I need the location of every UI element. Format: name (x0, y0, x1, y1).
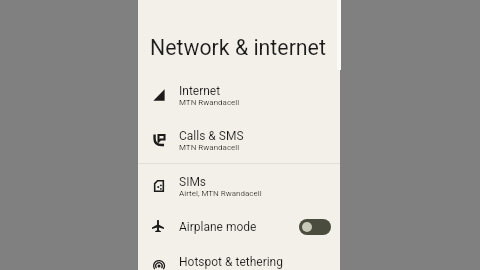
button[interactable]: Airplane mode toggle (299, 219, 331, 235)
staticText: Internet (179, 84, 221, 98)
staticText: MTN Rwandacell (179, 98, 240, 107)
button[interactable]: Airplane mode (138, 209, 340, 244)
button[interactable]: Calls & SMS (138, 118, 340, 163)
staticText: Calls & SMS (179, 129, 244, 143)
button[interactable]: Hotspot & tethering (138, 244, 340, 270)
staticText: SIMs (179, 175, 207, 189)
staticText: Hotspot & tethering (179, 255, 283, 269)
button[interactable]: Internet (138, 73, 340, 118)
staticText: MTN Rwandacell (179, 143, 240, 152)
staticText: Airplane mode (179, 220, 257, 234)
staticText: Airtel, MTN Rwandacell (179, 189, 262, 198)
button[interactable]: SIMs (138, 164, 340, 209)
staticText: Network & internet (150, 35, 326, 60)
